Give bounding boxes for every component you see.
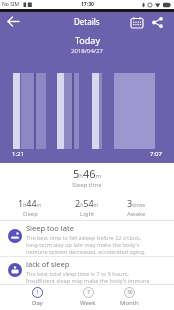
staticText: Deep xyxy=(23,210,38,218)
staticText: Insufficient sleep may make the body's i… xyxy=(26,277,150,284)
staticText: Sleep time xyxy=(72,181,102,189)
staticText: 2018/04/27 xyxy=(71,47,103,55)
staticText: The best total sleep time is 7 to 9 hour… xyxy=(26,270,129,277)
button[interactable]: 1 xyxy=(15,287,59,307)
staticText: 7:07 xyxy=(150,150,162,158)
staticText: 3times xyxy=(127,197,146,209)
staticText: 1h44m xyxy=(18,197,42,209)
button[interactable] xyxy=(0,12,26,30)
staticText: Day xyxy=(32,299,43,307)
staticText: 2h54m xyxy=(75,197,99,209)
staticText: Week xyxy=(80,299,96,307)
button[interactable] xyxy=(128,15,145,30)
staticText: Light xyxy=(80,210,95,218)
staticText: Awake xyxy=(127,210,146,218)
button[interactable]: 7 xyxy=(66,287,110,307)
staticText: immune system decreased, accelerated agi… xyxy=(26,248,146,255)
button[interactable]: Sleep too late xyxy=(0,221,174,256)
staticText: Month xyxy=(120,299,139,307)
staticText: The best time to fall asleep before 22 o… xyxy=(26,234,142,241)
staticText: 17:30 xyxy=(81,1,94,8)
staticText: 5h46m xyxy=(73,166,102,181)
staticText: lack of sleep xyxy=(26,259,70,269)
staticText: 1:21 xyxy=(12,150,24,158)
staticText: 30 xyxy=(127,289,133,296)
button[interactable]: lack of sleep xyxy=(0,257,174,284)
staticText: 7 xyxy=(87,289,90,296)
button[interactable] xyxy=(149,15,166,30)
staticText: Today xyxy=(75,34,100,46)
staticText: long-term stay up late may make the body… xyxy=(26,241,140,248)
staticText: Details xyxy=(74,16,100,27)
button[interactable]: 30 xyxy=(107,287,151,307)
staticText: No SIM xyxy=(2,1,20,8)
staticText: 1 xyxy=(36,289,39,296)
staticText: Sleep too late xyxy=(26,223,74,233)
